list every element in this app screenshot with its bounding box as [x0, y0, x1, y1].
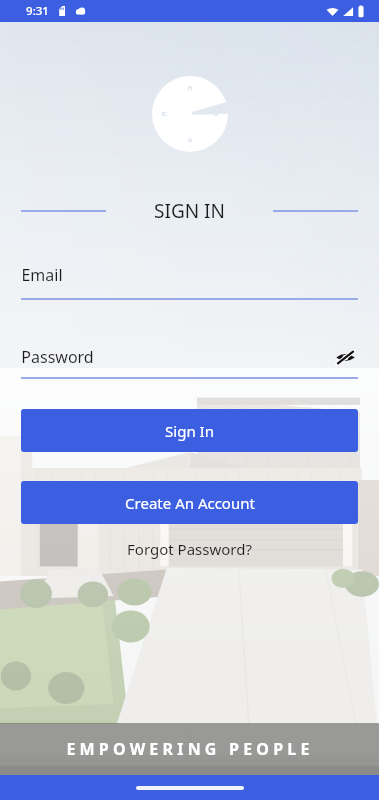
staticText: Password [21, 346, 94, 368]
staticText: Sign In [165, 421, 214, 441]
button[interactable]: Show password [332, 344, 358, 370]
staticText: EMPOWERING PEOPLE [66, 738, 314, 760]
button[interactable]: Sign In [21, 409, 358, 452]
staticText: 9:31 [26, 3, 49, 19]
button[interactable]: Create An Account [21, 481, 358, 524]
staticText: Forgot Password? [127, 539, 252, 559]
staticText: Email [21, 264, 63, 286]
staticText: Create An Account [125, 493, 255, 513]
button[interactable]: Forgot Password? [117, 535, 262, 563]
button[interactable]: Email [21, 264, 358, 300]
staticText: SIGN IN [154, 198, 225, 224]
button[interactable]: Password [21, 344, 358, 370]
